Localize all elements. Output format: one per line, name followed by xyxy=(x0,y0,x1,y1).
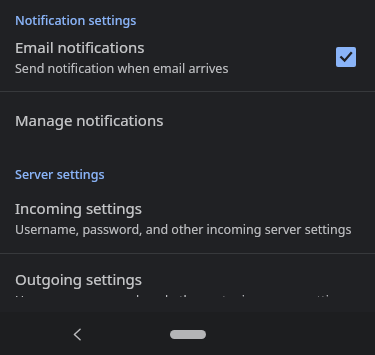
staticText: Username, password, and other outgoing s… xyxy=(15,292,351,297)
button[interactable]: Manage notifications xyxy=(0,92,375,147)
staticText: Notification settings xyxy=(15,12,137,29)
button[interactable]: Back xyxy=(62,319,92,349)
button[interactable]: Email notifications xyxy=(0,29,375,85)
staticText: Server settings xyxy=(15,166,105,183)
staticText: Email notifications xyxy=(15,37,145,57)
button[interactable]: Outgoing settings xyxy=(0,254,375,312)
staticText: Send notification when email arrives xyxy=(15,60,229,77)
staticText: Manage notifications xyxy=(15,110,164,130)
button[interactable]: Home xyxy=(158,321,218,347)
staticText: Outgoing settings xyxy=(15,269,142,289)
button[interactable]: Email notifications checkbox xyxy=(336,47,356,67)
staticText: Incoming settings xyxy=(15,198,142,218)
staticText: Username, password, and other incoming s… xyxy=(15,221,352,238)
button[interactable]: Incoming settings xyxy=(0,183,375,253)
